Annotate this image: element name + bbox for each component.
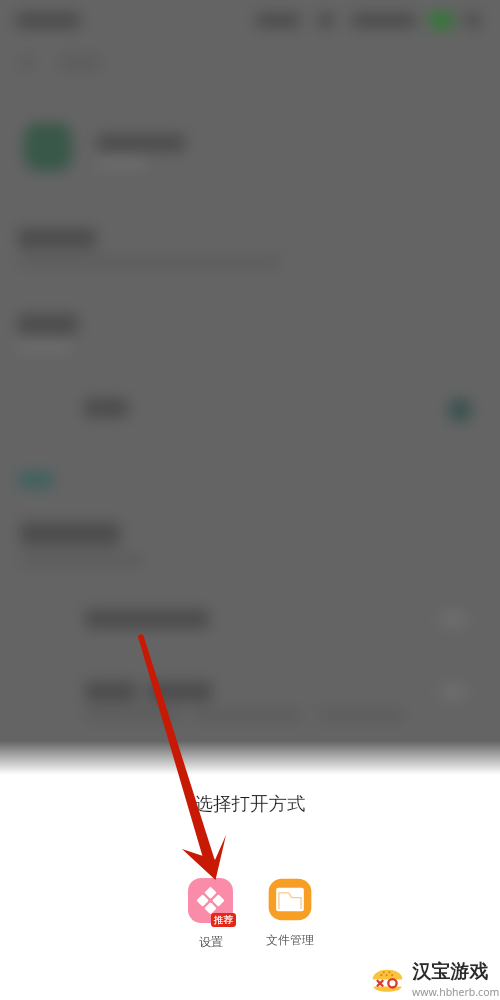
- button[interactable]: 推荐: [176, 878, 245, 949]
- staticText: 设置: [199, 934, 223, 949]
- button[interactable]: 文件管理: [249, 878, 330, 947]
- staticText: 选择打开方式: [0, 792, 500, 815]
- staticText: 推荐: [214, 914, 233, 926]
- staticText: 文件管理: [266, 932, 314, 947]
- staticText: 汉宝游戏: [412, 960, 488, 984]
- staticText: www.hbherb.com: [412, 985, 500, 999]
